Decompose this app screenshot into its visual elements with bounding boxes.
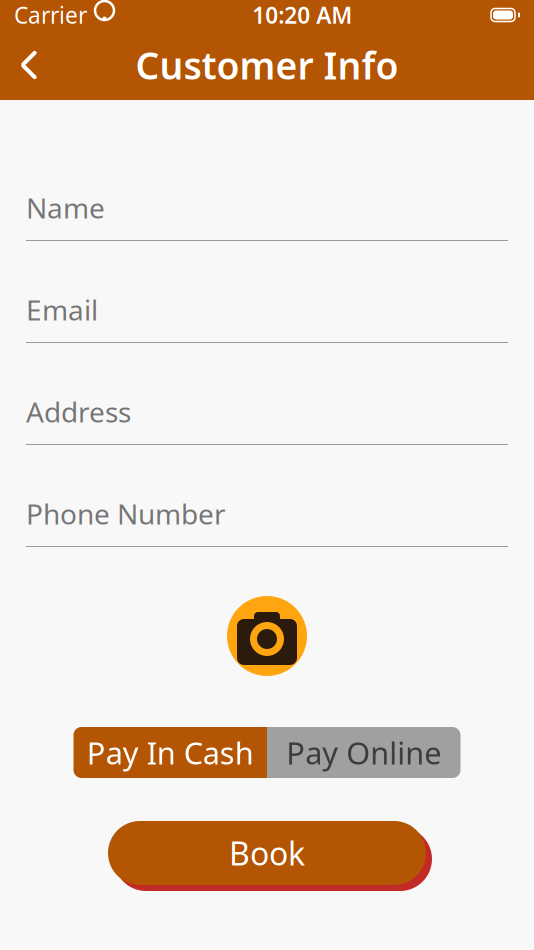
staticText: Email (26, 291, 98, 328)
button[interactable]: Pay In Cash (73, 727, 267, 778)
staticText: Pay Online (286, 732, 441, 773)
staticText: Pay In Cash (87, 732, 254, 773)
button[interactable]: Book (102, 815, 432, 891)
staticText: Name (26, 189, 105, 226)
staticText: Phone Number (26, 495, 226, 532)
staticText: Address (26, 393, 131, 430)
staticText: Book (229, 832, 305, 874)
button[interactable]: Back (0, 30, 58, 100)
staticText: Customer Info (135, 40, 398, 90)
staticText: 10:20 AM (252, 0, 352, 30)
button[interactable]: Pay Online (267, 727, 460, 778)
staticText: Carrier (14, 0, 87, 30)
